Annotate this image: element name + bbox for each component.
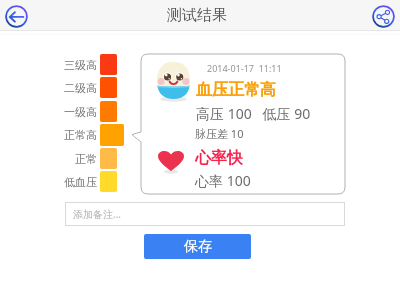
staticText: 2014-01-17 11:11 <box>207 62 282 74</box>
button[interactable] <box>100 77 117 98</box>
button[interactable]: 一级高 <box>55 102 97 122</box>
button[interactable]: 保存 <box>144 234 251 259</box>
staticText: 三级高 <box>64 58 97 72</box>
button[interactable] <box>100 148 117 169</box>
button[interactable]: Share <box>372 5 395 28</box>
staticText: 二级高 <box>64 81 97 95</box>
staticText: 血压正常高 <box>196 80 276 100</box>
staticText: 保存 <box>184 238 212 256</box>
staticText: 心率 100 <box>195 171 251 190</box>
button[interactable]: 三级高 <box>55 55 97 75</box>
staticText: 正常 <box>75 152 97 166</box>
button[interactable] <box>100 171 117 192</box>
button[interactable] <box>100 54 117 75</box>
button[interactable]: 二级高 <box>55 78 97 98</box>
button[interactable]: Back <box>5 5 28 28</box>
button[interactable]: 正常 <box>55 149 97 169</box>
staticText: 测试结果 <box>167 6 227 25</box>
button[interactable]: 低血压 <box>55 172 97 192</box>
button[interactable] <box>100 101 117 122</box>
staticText: 低血压 <box>64 175 97 189</box>
staticText: 高压 100 低压 90 <box>196 104 311 123</box>
staticText: 一级高 <box>64 105 97 119</box>
staticText: 正常高 <box>64 128 97 142</box>
staticText: 添加备注... <box>73 207 122 221</box>
staticText: 心率快 <box>195 148 243 168</box>
button[interactable]: 添加备注... <box>65 202 345 226</box>
staticText: 脉压差 10 <box>195 126 244 141</box>
button[interactable] <box>100 124 124 146</box>
button[interactable]: 正常高 <box>55 125 97 145</box>
